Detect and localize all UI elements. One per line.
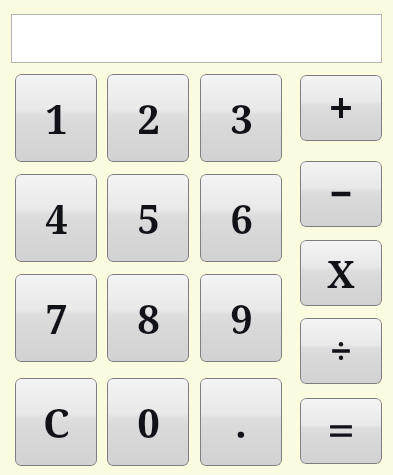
button[interactable]: 5	[107, 174, 189, 262]
button[interactable]: 4	[15, 174, 97, 262]
button[interactable]: Display	[11, 14, 382, 63]
staticText: 5	[137, 191, 160, 245]
button[interactable]: 8	[107, 274, 189, 362]
button[interactable]: 3	[200, 74, 282, 162]
button[interactable]: Equals	[300, 398, 382, 464]
staticText: 6	[230, 191, 253, 245]
staticText: 4	[45, 191, 68, 245]
button[interactable]: 2	[107, 74, 189, 162]
button[interactable]: Plus	[300, 75, 382, 141]
button[interactable]: 6	[200, 174, 282, 262]
button[interactable]: Divide	[300, 318, 382, 384]
staticText: 3	[230, 91, 253, 145]
button[interactable]: Multiply	[300, 240, 382, 306]
button[interactable]: 1	[15, 74, 97, 162]
staticText: 8	[137, 291, 160, 345]
staticText: 0	[137, 395, 160, 449]
staticText: 1	[45, 91, 68, 145]
button[interactable]: Minus	[300, 161, 382, 227]
button[interactable]: 0	[107, 378, 189, 466]
staticText: C	[43, 395, 70, 449]
staticText: 7	[45, 291, 68, 345]
staticText: X	[327, 247, 355, 299]
button[interactable]: 9	[200, 274, 282, 362]
staticText: .	[235, 395, 247, 449]
button[interactable]: C	[15, 378, 97, 466]
staticText: 9	[230, 291, 253, 345]
staticText: 2	[137, 91, 160, 145]
button[interactable]: Decimal point	[200, 378, 282, 466]
button[interactable]: 7	[15, 274, 97, 362]
